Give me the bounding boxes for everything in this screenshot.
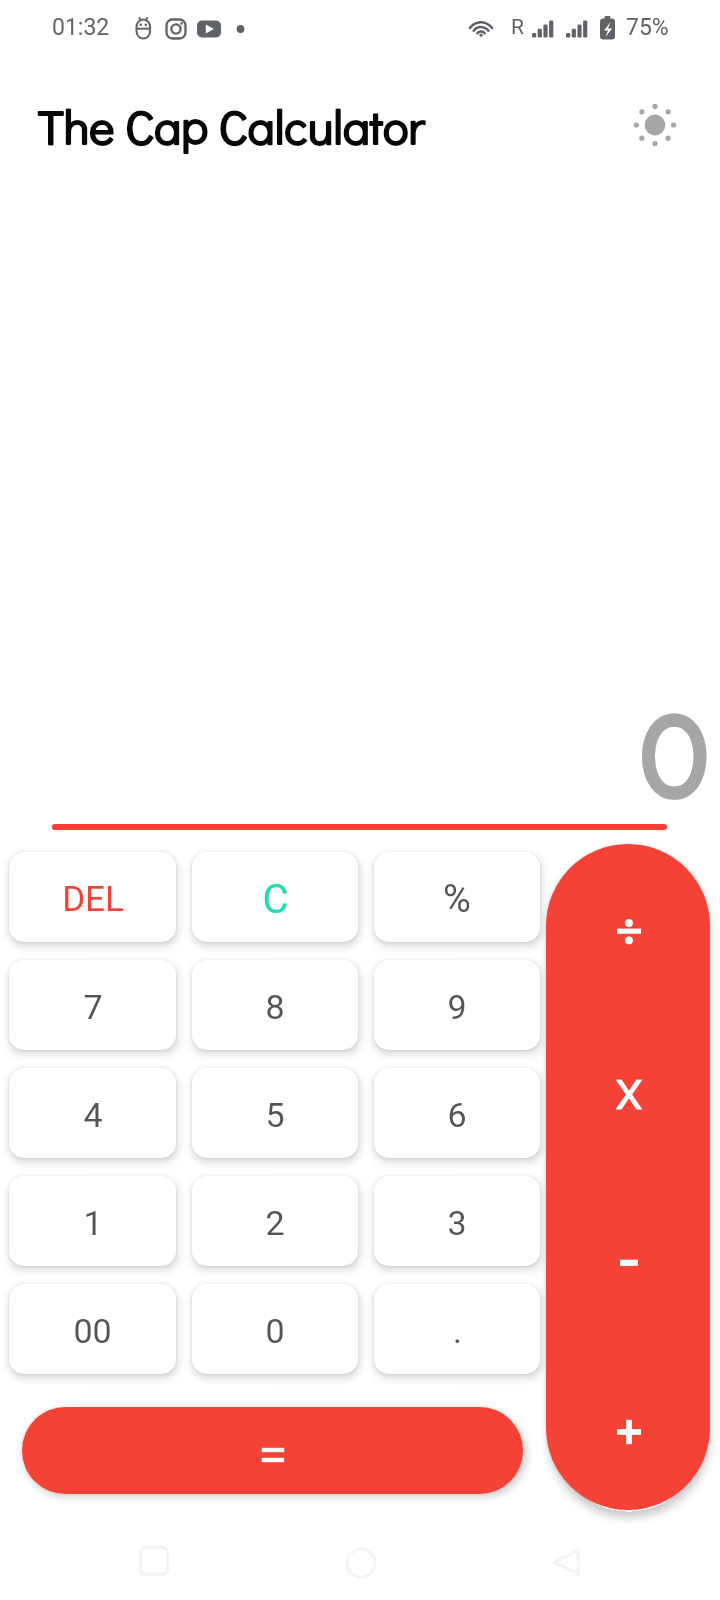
button[interactable]: 9 — [374, 960, 540, 1050]
staticText: % — [443, 877, 471, 922]
button[interactable]: 4 — [9, 1068, 176, 1158]
staticText: C — [262, 876, 289, 923]
button[interactable]: divide — [546, 844, 710, 1010]
button[interactable]: 8 — [192, 960, 358, 1050]
button[interactable]: 00 — [9, 1284, 176, 1374]
button[interactable]: 7 — [9, 960, 176, 1050]
button[interactable]: Toggle light and dark theme — [627, 97, 683, 153]
staticText: 01:32 — [52, 14, 110, 41]
staticText: The Cap Calculator — [38, 94, 720, 157]
button[interactable]: 2 — [192, 1176, 358, 1266]
button[interactable]: DEL — [9, 852, 176, 942]
staticText: . — [453, 1311, 462, 1351]
button[interactable]: 3 — [374, 1176, 540, 1266]
button[interactable]: . — [374, 1284, 540, 1374]
staticText: R — [511, 15, 524, 40]
button[interactable]: subtract — [546, 1176, 710, 1343]
button[interactable]: equals — [22, 1407, 523, 1494]
staticText: 5 — [265, 1095, 285, 1135]
button[interactable]: multiply — [546, 1010, 710, 1176]
button[interactable]: 6 — [374, 1068, 540, 1158]
staticText: 0 — [0, 691, 707, 823]
button[interactable]: 5 — [192, 1068, 358, 1158]
button[interactable]: C — [192, 852, 358, 942]
button[interactable]: % — [374, 852, 540, 942]
staticText: 75% — [626, 14, 669, 41]
button[interactable]: 1 — [9, 1176, 176, 1266]
staticText: DEL — [62, 879, 124, 920]
staticText: 00 — [73, 1311, 112, 1351]
staticText: 1 — [83, 1203, 103, 1243]
staticText: 7 — [83, 987, 103, 1027]
staticText: 8 — [265, 987, 285, 1027]
button[interactable]: add — [546, 1343, 710, 1510]
staticText: The Cap Calculator — [38, 94, 720, 157]
staticText: 6 — [447, 1095, 467, 1135]
staticText: 9 — [447, 987, 467, 1027]
staticText: 3 — [447, 1203, 467, 1243]
staticText: 4 — [83, 1095, 103, 1135]
staticText: 2 — [265, 1203, 285, 1243]
button[interactable]: 0 — [192, 1284, 358, 1374]
staticText: 0 — [0, 691, 707, 823]
staticText: 0 — [265, 1311, 285, 1351]
